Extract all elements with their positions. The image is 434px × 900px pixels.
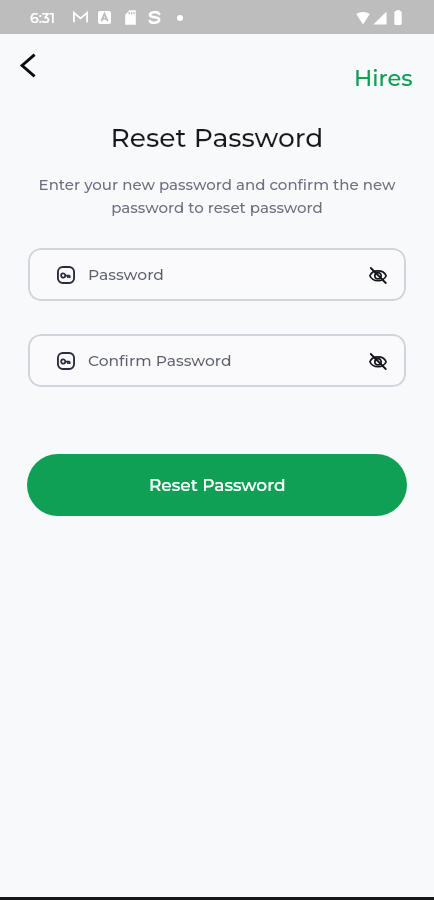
staticText: Password	[88, 265, 164, 284]
button[interactable]: Toggle password visibility	[369, 349, 387, 373]
button[interactable]: Toggle password visibility	[369, 263, 387, 287]
staticText: Confirm Password	[88, 351, 232, 370]
button[interactable]: Back	[4, 42, 50, 88]
staticText: 6:31	[30, 9, 56, 26]
button[interactable]: Reset Password	[27, 454, 407, 516]
button[interactable]: Password	[28, 248, 406, 301]
staticText: Reset Password	[149, 475, 286, 496]
staticText: Reset Password	[0, 121, 434, 153]
button[interactable]: Confirm Password	[28, 334, 406, 387]
staticText: Enter your new password and confirm the …	[20, 175, 414, 217]
button[interactable]: Hires	[354, 64, 434, 91]
